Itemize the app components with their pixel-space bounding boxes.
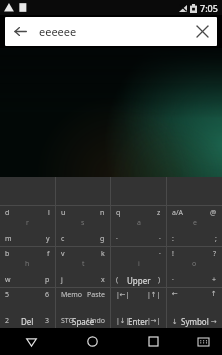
staticText: j bbox=[61, 275, 63, 285]
staticText: ) bbox=[158, 275, 161, 285]
staticText: g bbox=[100, 234, 105, 244]
staticText: f bbox=[47, 249, 50, 259]
staticText: ! bbox=[172, 249, 174, 259]
staticText: q bbox=[116, 208, 121, 218]
staticText: ; bbox=[215, 234, 217, 244]
button[interactable]: Recents bbox=[123, 328, 184, 355]
button[interactable]: ! bbox=[167, 247, 222, 287]
staticText: · bbox=[116, 234, 118, 244]
button[interactable]: q bbox=[111, 206, 166, 246]
staticText: Paste bbox=[87, 290, 105, 300]
staticText: s bbox=[81, 218, 85, 228]
staticText: i bbox=[138, 259, 140, 269]
staticText: + bbox=[212, 275, 217, 285]
staticText: Undo bbox=[87, 316, 105, 326]
staticText: x bbox=[101, 275, 105, 285]
button[interactable]: a/A bbox=[167, 206, 222, 246]
staticText: 5 bbox=[5, 290, 10, 300]
staticText: eeeeee bbox=[39, 24, 77, 39]
staticText: Upper bbox=[127, 275, 151, 286]
staticText: u bbox=[61, 208, 66, 218]
staticText: y bbox=[46, 234, 50, 244]
staticText: Space bbox=[72, 316, 95, 327]
staticText: k bbox=[101, 249, 105, 259]
staticText: r bbox=[26, 218, 29, 228]
button[interactable]: v bbox=[56, 247, 110, 287]
staticText: z bbox=[157, 208, 161, 218]
button[interactable]: b bbox=[0, 247, 55, 287]
staticText: |↓| bbox=[116, 316, 130, 326]
staticText: @ bbox=[210, 208, 217, 218]
staticText: Enter bbox=[128, 316, 149, 327]
staticText: STG bbox=[61, 316, 74, 326]
staticText: ← bbox=[172, 290, 178, 298]
staticText: h bbox=[25, 259, 30, 269]
button[interactable]: 5 bbox=[0, 288, 55, 328]
staticText: o bbox=[192, 259, 197, 269]
button[interactable]: Switch keyboard bbox=[184, 328, 222, 355]
staticText: 6 bbox=[45, 290, 50, 300]
button[interactable]: · bbox=[111, 247, 166, 287]
button[interactable]: Memo bbox=[56, 288, 110, 328]
staticText: p bbox=[45, 275, 50, 285]
staticText: |→| bbox=[147, 316, 161, 326]
staticText: c bbox=[61, 234, 65, 244]
staticText: ↓ bbox=[172, 318, 178, 326]
staticText: 7:05 bbox=[200, 2, 218, 14]
button[interactable]: Back bbox=[5, 17, 35, 46]
staticText: 2 bbox=[5, 316, 10, 326]
staticText: ( bbox=[116, 275, 119, 285]
staticText: n bbox=[100, 208, 105, 218]
staticText: ? bbox=[213, 249, 217, 259]
staticText: |↑| bbox=[147, 290, 161, 300]
staticText: v bbox=[61, 249, 65, 259]
staticText: · bbox=[159, 234, 161, 244]
staticText: m bbox=[5, 234, 12, 244]
staticText: · bbox=[159, 249, 161, 259]
button[interactable]: Home bbox=[62, 328, 123, 355]
button[interactable]: Back bbox=[0, 328, 62, 355]
staticText: Memo bbox=[61, 290, 83, 300]
button[interactable]: ← bbox=[167, 288, 222, 328]
staticText: t bbox=[82, 259, 85, 269]
staticText: b bbox=[5, 249, 10, 259]
button[interactable]: |←| bbox=[111, 288, 166, 328]
staticText: 3 bbox=[45, 316, 50, 326]
button[interactable]: u bbox=[56, 206, 110, 246]
staticText: l bbox=[48, 208, 50, 218]
staticText: a/A bbox=[172, 208, 184, 218]
staticText: a bbox=[137, 218, 141, 228]
staticText: · bbox=[172, 275, 174, 285]
staticText: ↑ bbox=[211, 290, 217, 298]
button[interactable]: d bbox=[0, 206, 55, 246]
staticText: Symbol bbox=[181, 316, 209, 327]
staticText: w bbox=[5, 275, 11, 285]
staticText: e bbox=[193, 218, 197, 228]
staticText: Del bbox=[21, 316, 34, 327]
staticText: |←| bbox=[116, 290, 130, 300]
staticText: : bbox=[172, 234, 174, 244]
button[interactable]: Clear bbox=[187, 17, 217, 46]
staticText: d bbox=[5, 208, 10, 218]
staticText: → bbox=[211, 318, 217, 326]
